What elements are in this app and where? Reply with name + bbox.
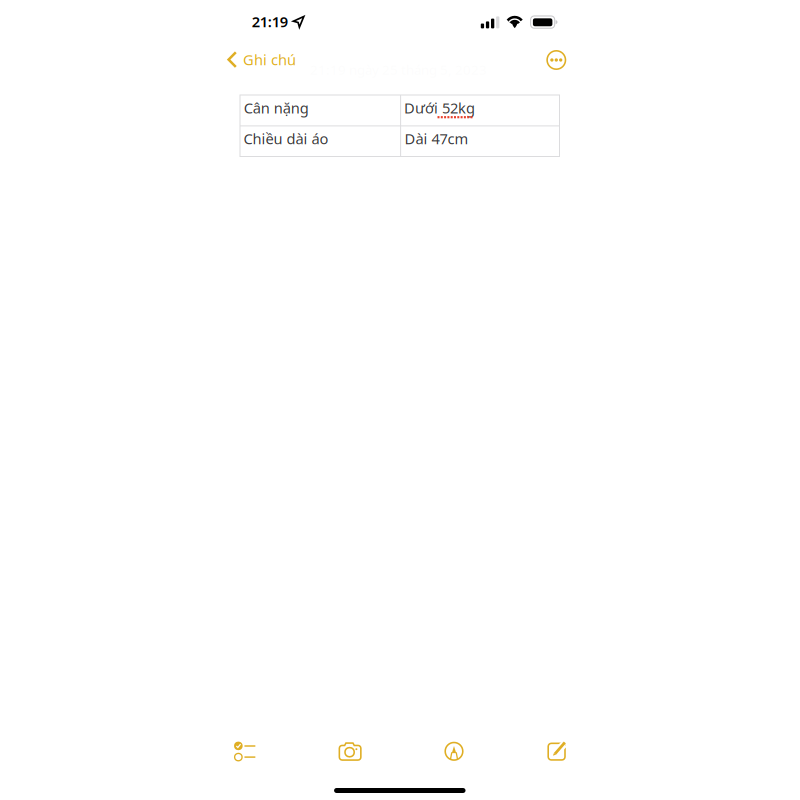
button[interactable]: Camera: [326, 730, 373, 772]
staticText: Ghi chú: [243, 50, 296, 69]
staticText: Cân nặng: [244, 98, 309, 117]
button[interactable]: Ghi chú: [219, 42, 304, 77]
staticText: Dài 47cm: [404, 129, 468, 148]
staticText: 21:19: [252, 12, 288, 31]
button[interactable]: New note: [535, 728, 579, 772]
button[interactable]: More: [538, 42, 574, 78]
button[interactable]: Markup: [432, 730, 476, 773]
staticText: Dưới 52kg: [404, 98, 475, 117]
button[interactable]: Checklist: [222, 730, 268, 773]
staticText: Chiều dài áo: [243, 129, 328, 148]
